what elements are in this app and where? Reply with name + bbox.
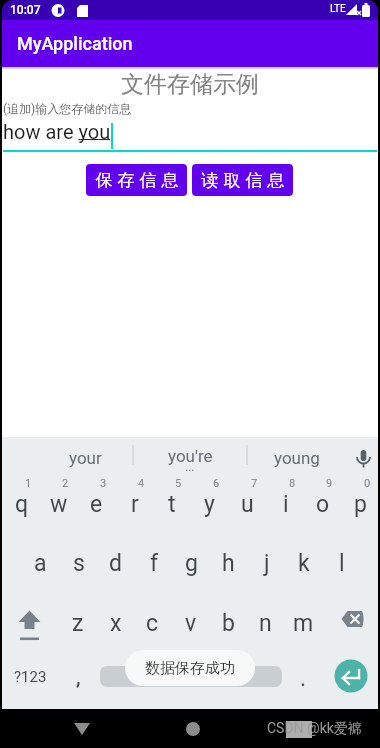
staticText: 0	[364, 477, 371, 490]
staticText: 读取信息	[199, 170, 287, 191]
staticText: g	[185, 550, 198, 577]
button[interactable]	[8, 592, 48, 648]
staticText: 7	[251, 477, 258, 490]
button[interactable]: u	[229, 478, 266, 530]
staticText: d	[109, 550, 122, 577]
button[interactable]: d	[97, 535, 134, 591]
button[interactable]: r	[116, 478, 153, 530]
staticText: l	[339, 550, 345, 577]
button[interactable]: you're	[135, 443, 245, 469]
staticText: LTE	[330, 3, 346, 15]
button[interactable]: p	[342, 478, 379, 530]
staticText: 2	[62, 477, 69, 490]
button[interactable]	[62, 709, 102, 748]
button[interactable]: e	[78, 478, 115, 530]
staticText: 1	[25, 477, 32, 490]
button[interactable]: young	[249, 441, 345, 475]
button[interactable]: q	[3, 478, 40, 530]
staticText: c	[146, 610, 159, 637]
staticText: t	[168, 491, 176, 518]
button[interactable]	[346, 443, 376, 471]
button[interactable]: g	[173, 535, 210, 591]
button[interactable]: ?123	[4, 652, 56, 702]
button[interactable]: t	[153, 478, 190, 530]
staticText: 数据保存成功	[145, 659, 235, 678]
staticText: p	[354, 491, 367, 518]
staticText: ...	[185, 460, 195, 472]
button[interactable]: b	[210, 595, 247, 651]
button[interactable]: i	[267, 478, 304, 530]
staticText: 6	[213, 477, 220, 490]
button[interactable]: l	[323, 535, 360, 591]
button[interactable]: w	[40, 478, 77, 530]
staticText: j	[264, 550, 270, 577]
button[interactable]: o	[304, 478, 341, 530]
button[interactable]: v	[172, 595, 209, 651]
staticText: 5	[175, 477, 182, 490]
staticText: z	[72, 610, 84, 637]
button[interactable]: .	[285, 656, 321, 700]
staticText: i	[283, 491, 289, 518]
button[interactable]: ,	[60, 655, 96, 699]
staticText: 8	[289, 477, 296, 490]
staticText: you're	[168, 446, 213, 466]
staticText: 保存信息	[93, 170, 181, 191]
staticText: s	[73, 550, 85, 577]
staticText: 文件存储示例	[121, 70, 259, 98]
staticText: CSDN @kk爱褯	[267, 720, 362, 738]
button[interactable]: h	[210, 535, 247, 591]
button[interactable]: your	[38, 441, 132, 475]
button[interactable]: 读取信息	[192, 164, 293, 196]
button[interactable]: c	[134, 595, 171, 651]
staticText: a	[34, 550, 47, 577]
staticText: your	[69, 448, 102, 468]
staticText: 4	[138, 477, 145, 490]
button[interactable]	[332, 592, 372, 648]
staticText: young	[274, 448, 320, 468]
staticText: o	[316, 491, 330, 518]
button[interactable]	[96, 662, 272, 690]
staticText: u	[241, 491, 254, 518]
button[interactable]	[173, 709, 213, 748]
staticText: b	[222, 610, 235, 637]
staticText: MyApplication	[17, 33, 133, 54]
staticText: 10:07	[10, 3, 41, 17]
staticText: how are you	[3, 120, 111, 143]
staticText: .	[300, 665, 307, 692]
button[interactable]: f	[135, 535, 172, 591]
staticText: ,	[76, 664, 81, 691]
button[interactable]: m	[285, 595, 322, 651]
staticText: m	[293, 610, 314, 637]
staticText: 9	[326, 477, 333, 490]
staticText: k	[298, 550, 310, 577]
button[interactable]: 保存信息	[86, 164, 187, 196]
button[interactable]: z	[59, 595, 96, 651]
staticText: w	[50, 491, 68, 518]
staticText: y	[204, 491, 215, 518]
staticText: x	[110, 610, 122, 637]
button[interactable]: k	[285, 535, 322, 591]
staticText: (追加)输入您存储的信息	[3, 101, 132, 116]
staticText: r	[131, 491, 139, 518]
button[interactable]: x	[97, 595, 134, 651]
button[interactable]	[334, 659, 368, 693]
button[interactable]: n	[247, 595, 284, 651]
staticText: h	[222, 550, 235, 577]
staticText: f	[150, 550, 158, 577]
button[interactable]: y	[191, 478, 228, 530]
button[interactable]: j	[248, 535, 285, 591]
button[interactable]: a	[22, 535, 59, 591]
staticText: n	[259, 610, 272, 637]
staticText: e	[90, 491, 103, 518]
staticText: q	[15, 491, 29, 518]
button[interactable]: s	[60, 535, 97, 591]
staticText: ?123	[14, 668, 47, 686]
staticText: v	[185, 610, 197, 637]
staticText: 3	[100, 477, 107, 490]
button[interactable]: how are you	[0, 118, 380, 153]
